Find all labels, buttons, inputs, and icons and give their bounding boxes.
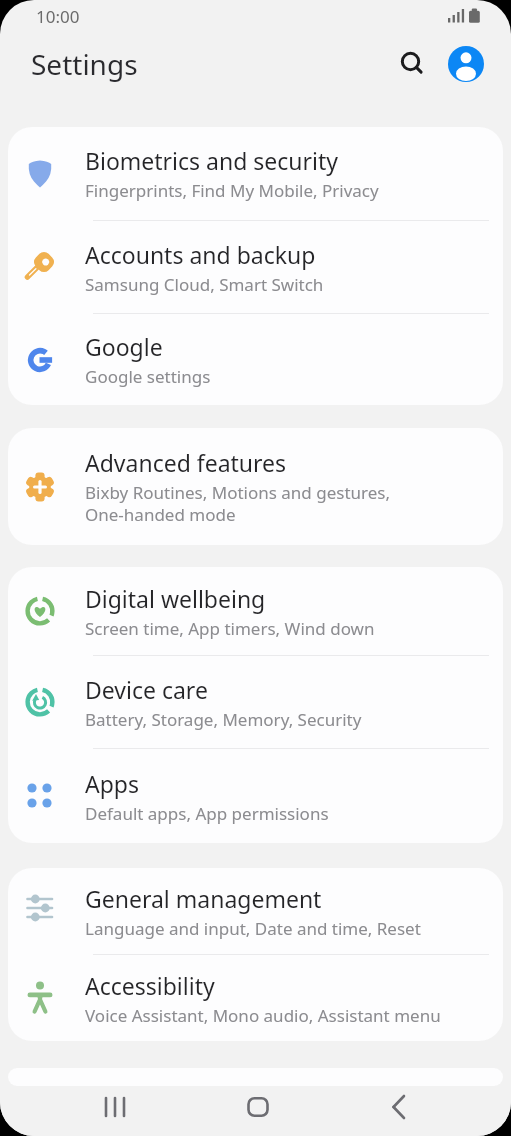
staticText: Apps (85, 768, 140, 799)
button[interactable] (394, 46, 430, 82)
button[interactable]: Apps (8, 749, 503, 843)
button[interactable]: Digital wellbeing (8, 567, 503, 655)
staticText: Biometrics and security (85, 145, 339, 176)
staticText: Fingerprints, Find My Mobile, Privacy (85, 179, 379, 202)
button[interactable]: Biometrics and security (8, 127, 503, 220)
staticText: Bixby Routines, Motions and gestures, On… (85, 481, 391, 526)
staticText: 10:00 (36, 5, 80, 28)
staticText: Advanced features (85, 447, 287, 478)
staticText: Samsung Cloud, Smart Switch (85, 273, 324, 296)
button[interactable]: Google (8, 314, 503, 405)
staticText: Google (85, 331, 163, 362)
button[interactable]: Advanced features (8, 428, 503, 545)
button[interactable] (171, 1086, 341, 1136)
staticText: Battery, Storage, Memory, Security (85, 708, 362, 731)
button[interactable] (448, 46, 484, 82)
staticText: Accounts and backup (85, 239, 316, 270)
staticText: Accessibility (85, 970, 215, 1001)
staticText: General management (85, 883, 322, 914)
staticText: Language and input, Date and time, Reset (85, 917, 421, 940)
staticText: Screen time, App timers, Wind down (85, 617, 375, 640)
staticText: Digital wellbeing (85, 583, 266, 614)
staticText: Device care (85, 674, 208, 705)
button[interactable]: Accounts and backup (8, 221, 503, 313)
button[interactable]: Device care (8, 656, 503, 748)
button[interactable]: General management (8, 868, 503, 954)
button[interactable] (0, 1086, 171, 1136)
staticText: Default apps, App permissions (85, 802, 329, 825)
staticText: Settings (31, 45, 138, 83)
staticText: Google settings (85, 365, 211, 388)
staticText: Voice Assistant, Mono audio, Assistant m… (85, 1004, 441, 1027)
button[interactable]: Accessibility (8, 955, 503, 1041)
button[interactable] (341, 1086, 511, 1136)
